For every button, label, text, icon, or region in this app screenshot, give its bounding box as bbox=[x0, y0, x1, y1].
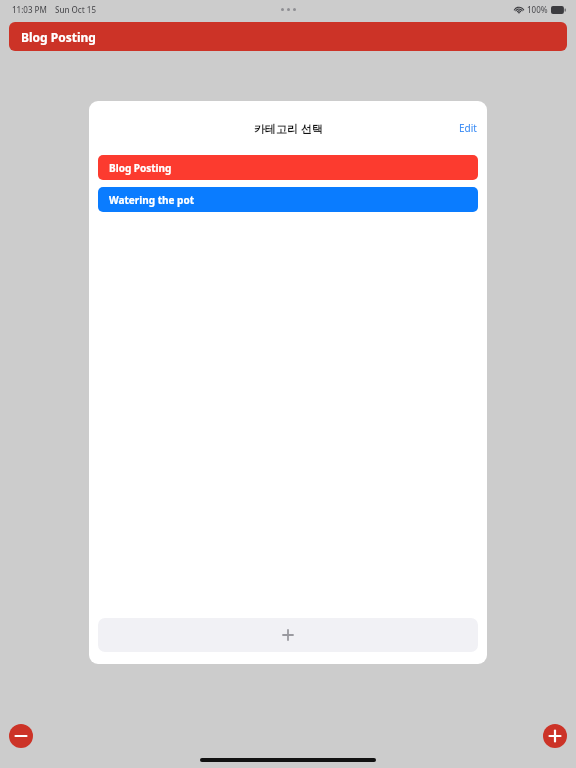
button[interactable]: Add category bbox=[98, 618, 478, 652]
staticText: Watering the pot bbox=[109, 193, 194, 207]
button[interactable]: Edit bbox=[449, 115, 487, 141]
staticText: Edit bbox=[459, 121, 477, 135]
staticText: 11:03 PM bbox=[12, 4, 47, 15]
staticText: Sun Oct 15 bbox=[55, 4, 97, 15]
button[interactable]: Blog Posting bbox=[9, 22, 567, 51]
staticText: 카테고리 선택 bbox=[254, 121, 323, 136]
button[interactable]: Watering the pot bbox=[98, 187, 478, 212]
button[interactable]: Add entry bbox=[543, 724, 567, 748]
staticText: Blog Posting bbox=[21, 29, 96, 45]
button[interactable]: Blog Posting bbox=[98, 155, 478, 180]
button[interactable]: Remove category bbox=[9, 724, 33, 748]
staticText: Blog Posting bbox=[109, 161, 172, 175]
staticText: 100% bbox=[527, 4, 548, 15]
